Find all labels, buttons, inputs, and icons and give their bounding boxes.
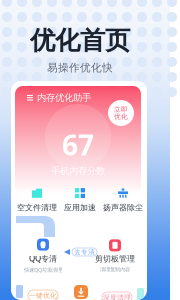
staticText: 扬声器除尘: [103, 203, 143, 212]
button[interactable]: 去专清: [72, 248, 97, 256]
button[interactable]: 立即: [108, 100, 134, 126]
button[interactable]: 应用加速: [58, 188, 102, 212]
button[interactable]: 空文件清理: [15, 188, 59, 212]
staticText: 一键优化: [29, 291, 57, 300]
staticText: 空文件清理: [17, 203, 57, 212]
button[interactable]: 扬声器除尘: [101, 188, 145, 212]
staticText: 深度清理: [103, 293, 131, 300]
staticText: QQ专清: [29, 253, 57, 264]
staticText: 清理复制内容: [100, 266, 130, 273]
button[interactable]: 深度清理: [102, 292, 132, 300]
button[interactable]: 剪切板管理: [83, 239, 147, 273]
staticText: 优化: [114, 112, 128, 121]
button[interactable]: Download: [74, 285, 88, 299]
staticText: 优化首页: [30, 25, 130, 56]
staticText: 剪切板管理: [95, 254, 135, 264]
staticText: 快速QQ垃圾清理: [24, 266, 62, 273]
staticText: 去专清: [74, 248, 95, 256]
staticText: 立即: [114, 105, 128, 113]
staticText: 应用加速: [64, 203, 96, 212]
staticText: 67: [62, 126, 94, 163]
staticText: 易操作优化快: [47, 61, 113, 74]
button[interactable]: 一键优化: [28, 290, 58, 300]
staticText: 内存优化助手: [37, 92, 91, 103]
staticText: 手机内存分数: [51, 165, 105, 177]
button[interactable]: QQ专清: [11, 239, 75, 273]
